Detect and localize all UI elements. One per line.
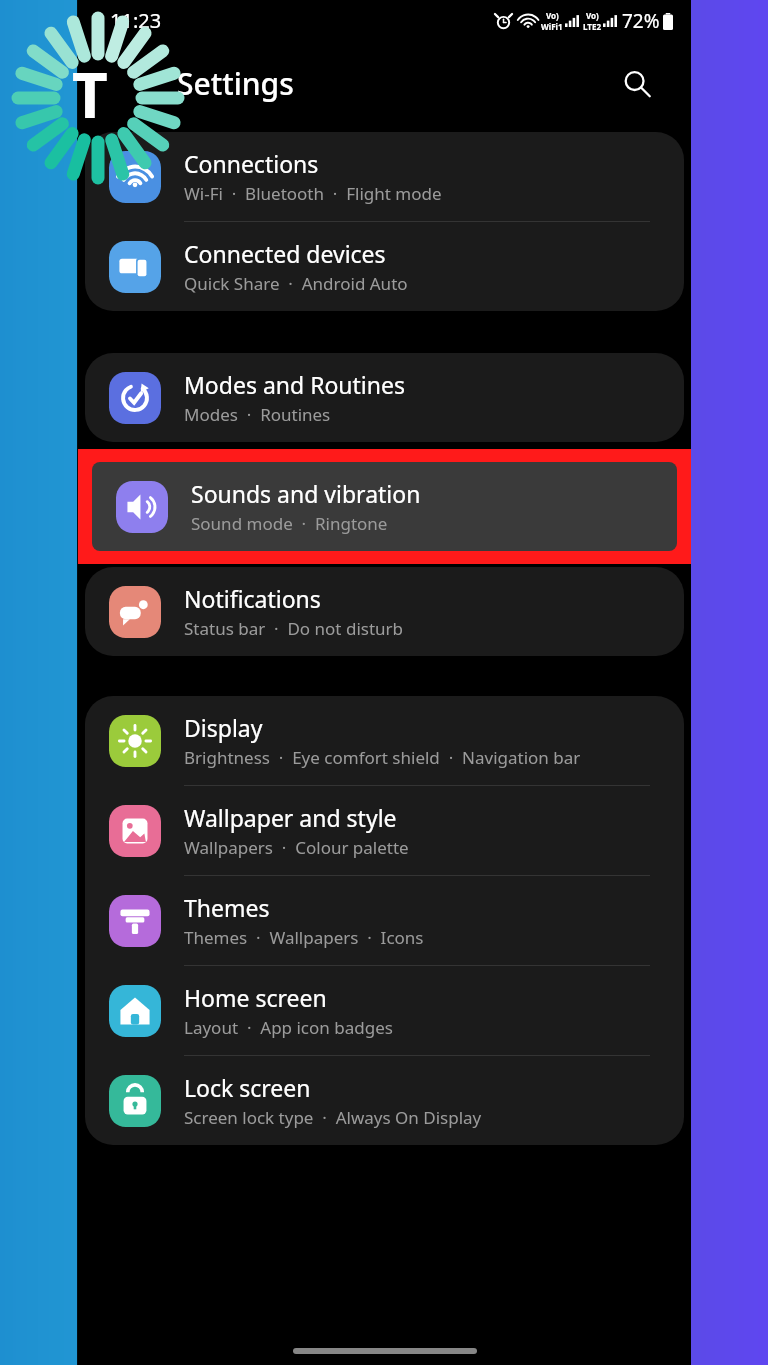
staticText: Wallpapers · Colour palette (184, 836, 409, 859)
button[interactable]: Notifications (85, 567, 684, 656)
button[interactable]: Connected devices (85, 222, 684, 311)
staticText: Brightness · Eye comfort shield · Naviga… (184, 746, 581, 769)
staticText: Sound mode · Ringtone (191, 512, 388, 535)
button[interactable]: Modes and Routines (85, 353, 684, 442)
button[interactable]: Sounds and vibration (92, 462, 677, 551)
staticText: Screen lock type · Always On Display (184, 1106, 482, 1129)
button[interactable]: Connections (85, 132, 684, 221)
staticText: Wi-Fi · Bluetooth · Flight mode (184, 182, 442, 205)
staticText: Notifications (184, 583, 321, 614)
staticText: Layout · App icon badges (184, 1016, 393, 1039)
staticText: Vo) (546, 10, 559, 21)
button[interactable]: Search (614, 61, 658, 105)
button[interactable]: Wallpaper and style (85, 786, 684, 875)
staticText: Quick Share · Android Auto (184, 272, 408, 295)
staticText: Vo) (586, 10, 599, 21)
staticText: Themes · Wallpapers · Icons (184, 926, 424, 949)
button[interactable]: Display (85, 696, 684, 785)
staticText: 11:23 (110, 7, 162, 34)
staticText: Themes (184, 892, 270, 923)
staticText: Lock screen (184, 1072, 311, 1103)
staticText: Modes · Routines (184, 403, 331, 426)
staticText: 72% (622, 8, 660, 34)
staticText: Wallpaper and style (184, 802, 397, 833)
staticText: Display (184, 712, 263, 743)
button[interactable]: Home screen (85, 966, 684, 1055)
staticText: Settings (177, 63, 294, 104)
staticText: Connections (184, 148, 319, 179)
button[interactable]: Themes (85, 876, 684, 965)
staticText: Sounds and vibration (191, 478, 421, 509)
staticText: Modes and Routines (184, 369, 406, 400)
staticText: WiFi1 (541, 21, 563, 32)
staticText: Connected devices (184, 238, 386, 269)
staticText: Status bar · Do not disturb (184, 617, 404, 640)
staticText: LTE2 (583, 21, 601, 32)
button[interactable]: Lock screen (85, 1056, 684, 1145)
staticText: T (72, 52, 108, 136)
staticText: Home screen (184, 982, 327, 1013)
